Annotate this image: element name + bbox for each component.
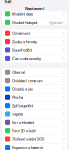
button[interactable]: Face ID a kód <box>2 127 67 135</box>
button[interactable]: Mobilní data <box>2 10 67 18</box>
button[interactable]: Obecné <box>2 68 67 76</box>
staticText: Plocha <box>12 95 23 100</box>
staticText: Obecné <box>12 70 25 75</box>
button[interactable]: Siri a hledání <box>2 118 67 127</box>
button[interactable]: Ovládací centrum <box>2 76 67 85</box>
staticText: Mobilní data <box>12 11 33 16</box>
staticText: Zpřístupnění <box>12 103 33 108</box>
staticText: Face ID a kód <box>12 128 35 133</box>
button[interactable]: Plocha <box>2 93 67 101</box>
staticText: Siri a hledání <box>12 120 34 125</box>
button[interactable]: Expozice a baterie <box>2 143 67 150</box>
button[interactable]: Tísňové volání SOS <box>2 135 67 143</box>
staticText: Tapeta <box>12 111 23 117</box>
button[interactable]: Zvuky a hmaty <box>2 38 67 46</box>
staticText: Osobní hotspot <box>12 20 37 25</box>
staticText: Displej a jas <box>12 86 33 92</box>
staticText: Vypnuto <box>49 20 62 25</box>
button[interactable]: Soustředění <box>2 46 67 54</box>
staticText: Tísňové volání SOS <box>12 136 44 142</box>
staticText: Nastavení <box>25 6 44 11</box>
staticText: Ovládací centrum <box>12 78 43 83</box>
button[interactable]: Tapeta <box>2 110 67 118</box>
button[interactable]: Displej a jas <box>2 85 67 93</box>
staticText: 9:41 <box>4 0 11 4</box>
button[interactable]: Zpřístupnění <box>2 102 67 110</box>
staticText: Čas u obrazovky <box>12 56 41 61</box>
button[interactable]: Osobní hotspot <box>2 18 67 26</box>
button[interactable]: Oznámení <box>2 29 67 37</box>
staticText: Soustředění <box>12 47 32 53</box>
staticText: Oznámení <box>12 31 30 36</box>
staticText: Expozice a baterie <box>12 145 43 150</box>
staticText: Zvuky a hmaty <box>12 39 37 44</box>
button[interactable]: Čas u obrazovky <box>2 54 67 63</box>
